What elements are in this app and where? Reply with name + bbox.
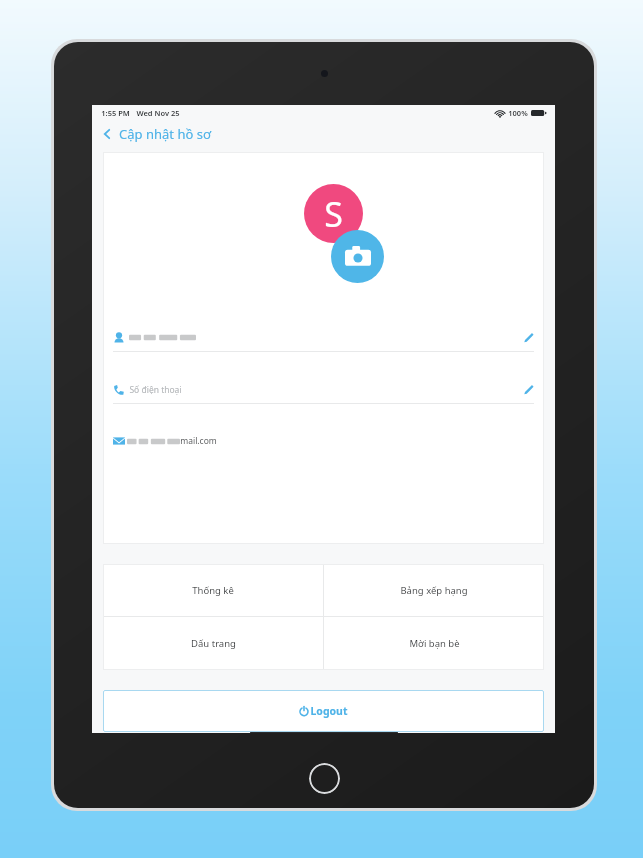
button[interactable]: Back [92,121,555,147]
staticText: mail.com [180,435,217,447]
button[interactable]: Edit [523,332,534,343]
staticText: Bảng xếp hạng [400,584,468,597]
button[interactable]: Mời bạn bè [324,617,544,670]
button[interactable]: Logout [103,690,544,732]
other: Back [100,127,114,141]
staticText: Wed Nov 25 [136,108,180,118]
staticText: 1:55 PM [101,108,130,118]
button[interactable]: Số điện thoại [103,379,544,404]
staticText: 100% [508,108,528,118]
staticText: Dấu trang [191,637,236,650]
button[interactable]: Bảng xếp hạng [324,564,544,616]
staticText: Logout [310,704,348,718]
staticText: Số điện thoại [129,384,182,396]
other: Home [309,763,340,794]
button[interactable]: Edit [523,384,534,395]
button[interactable]: Avatar [304,184,363,243]
button[interactable]: mail.com [113,431,534,451]
staticText: Cập nhật hồ sơ [119,125,211,143]
button[interactable]: Edit [103,327,544,352]
staticText: Mời bạn bè [409,637,460,650]
staticText: Thống kê [192,584,234,597]
button[interactable]: Thống kê [103,564,323,616]
staticText: S [324,191,343,237]
button[interactable]: Change photo [331,230,384,283]
button[interactable]: Dấu trang [103,617,323,670]
